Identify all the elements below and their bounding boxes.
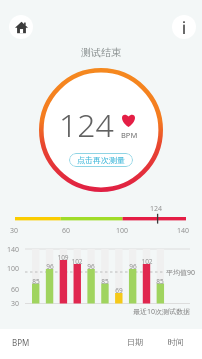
staticText: 124: [150, 204, 163, 214]
staticText: 96: [84, 262, 98, 271]
staticText: 点击再次测量: [77, 155, 125, 165]
staticText: 109: [56, 253, 70, 262]
staticText: 85: [153, 277, 167, 286]
staticText: 测试结束: [81, 46, 121, 59]
staticText: 102: [140, 257, 154, 266]
staticText: 最近10次测试数据: [133, 307, 191, 317]
staticText: 30: [10, 226, 19, 236]
button[interactable]: Home: [9, 15, 33, 39]
staticText: 60: [62, 226, 71, 236]
staticText: 102: [70, 257, 84, 266]
staticText: 日期: [127, 337, 143, 347]
staticText: 100: [116, 226, 129, 236]
staticText: 100: [7, 264, 20, 274]
button[interactable]: Info: [172, 15, 196, 39]
staticText: 85: [29, 277, 43, 286]
staticText: 140: [7, 245, 20, 255]
staticText: 96: [126, 262, 140, 271]
staticText: 96: [43, 262, 57, 271]
staticText: 时间: [168, 337, 184, 347]
staticText: BPM: [12, 337, 30, 348]
staticText: BPM: [121, 130, 138, 140]
staticText: 69: [112, 286, 126, 295]
staticText: 60: [11, 285, 20, 295]
staticText: 30: [11, 299, 20, 309]
staticText: 140: [177, 226, 190, 236]
staticText: 平均值90: [166, 268, 196, 278]
button[interactable]: 点击再次测量: [69, 153, 133, 167]
staticText: 85: [98, 277, 112, 286]
staticText: 124: [59, 103, 114, 147]
